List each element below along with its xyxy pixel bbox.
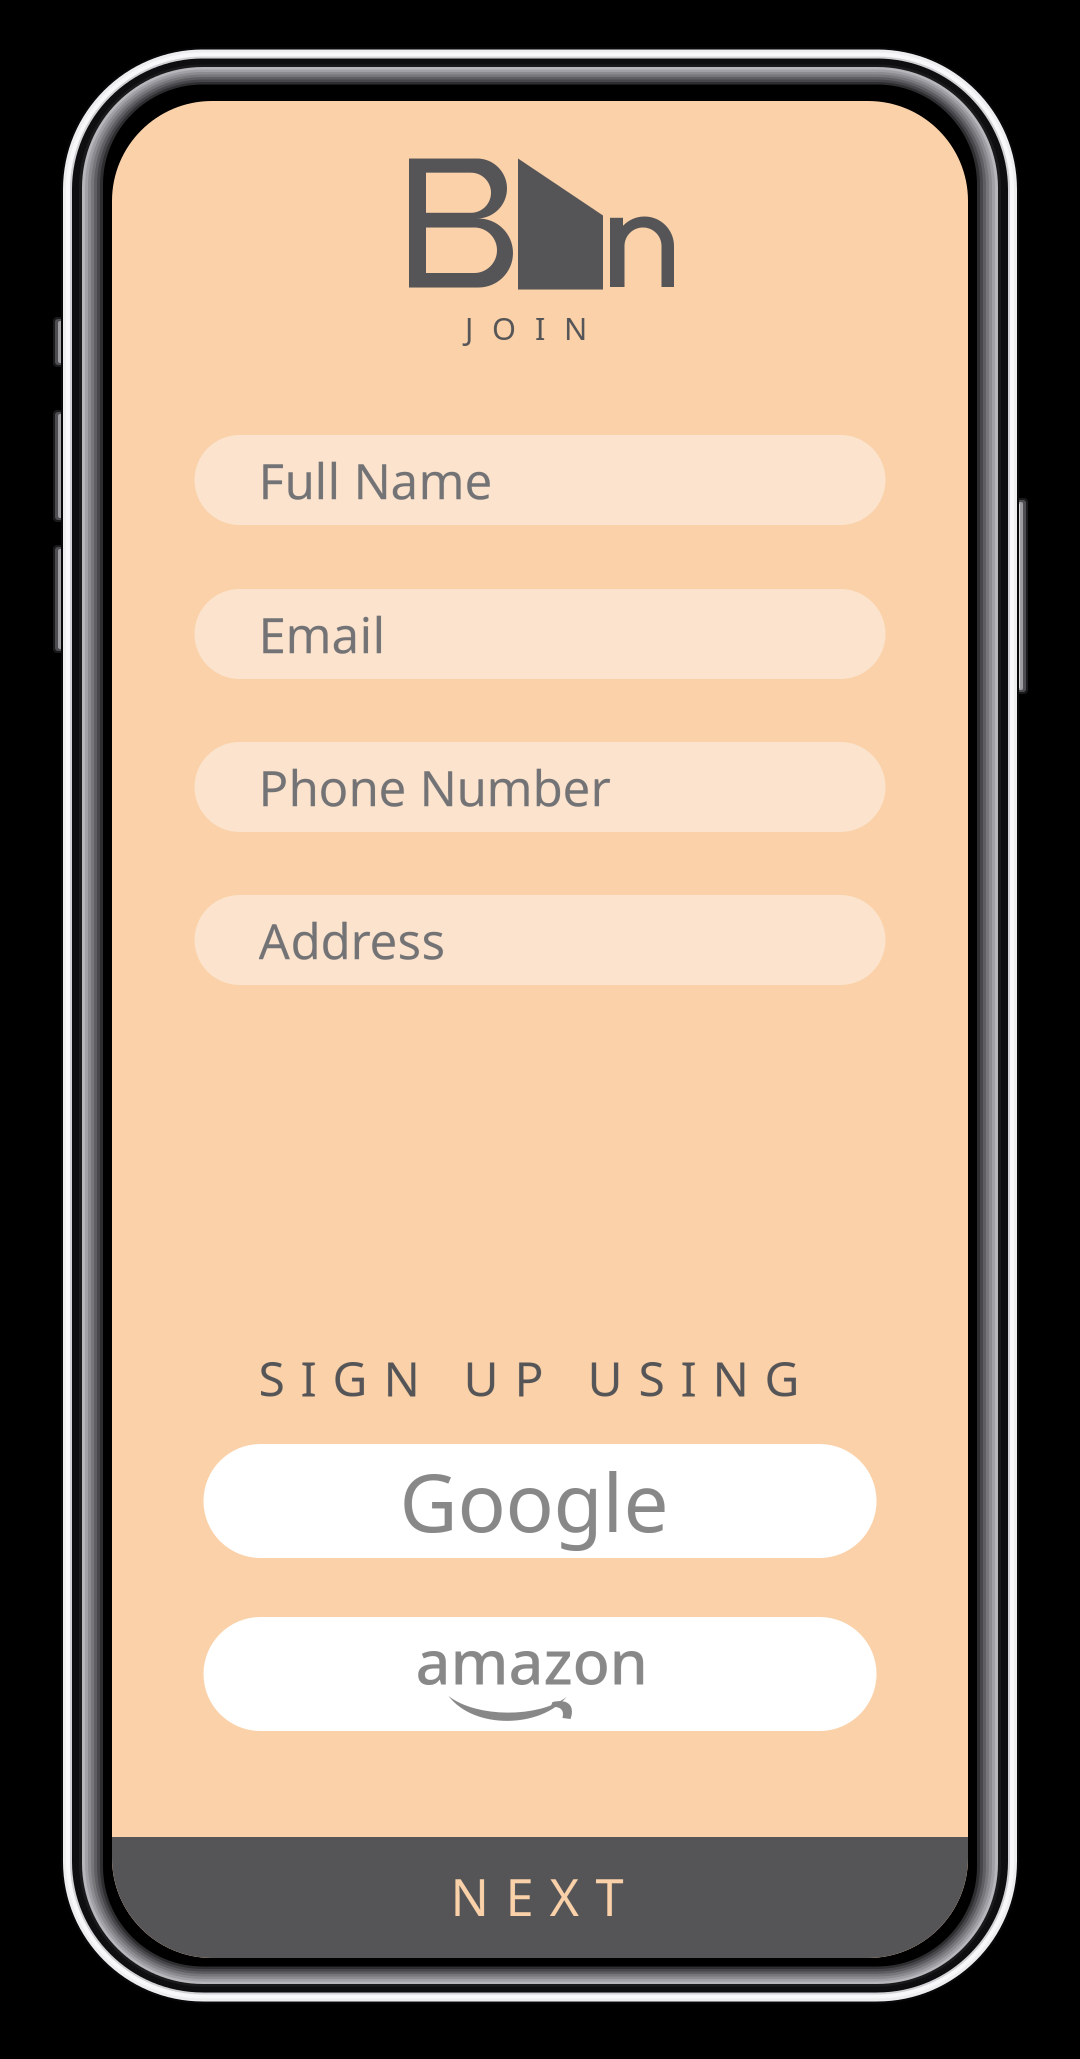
staticText: Phone Number — [258, 754, 610, 820]
staticText: Address — [258, 907, 445, 973]
button[interactable]: Full Name — [194, 435, 885, 525]
staticText: Full Name — [258, 447, 492, 513]
button[interactable]: Address — [194, 895, 885, 985]
button[interactable]: amazon — [203, 1617, 876, 1731]
staticText: JOIN — [465, 308, 587, 348]
button[interactable]: NEXT — [112, 1837, 968, 1958]
button[interactable]: Phone Number — [194, 742, 885, 832]
button[interactable]: Google — [203, 1444, 876, 1558]
staticText: Google — [399, 1448, 668, 1554]
staticText: amazon — [415, 1620, 647, 1701]
staticText: Email — [258, 601, 385, 667]
staticText: SIGN UP USING — [258, 1346, 799, 1410]
button[interactable]: Email — [194, 589, 885, 679]
staticText: NEXT — [450, 1863, 623, 1930]
